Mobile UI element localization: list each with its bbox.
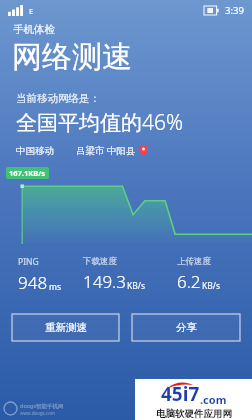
staticText: 上传速度 — [177, 256, 211, 267]
staticText: 6.2 — [177, 270, 201, 293]
staticText: 重新测速 — [45, 321, 87, 334]
button[interactable]: 分享 — [132, 314, 240, 341]
staticText: 当前移动网络是： — [16, 92, 100, 105]
staticText: 3:39 — [225, 4, 244, 17]
staticText: 电脑软硬件应用网 — [156, 408, 232, 420]
staticText: KB/s — [202, 280, 221, 292]
staticText: 分享 — [176, 321, 197, 334]
staticText: www.doogs.com — [20, 410, 56, 416]
staticText: 手机体检 — [13, 23, 55, 36]
staticText: 149.3 — [83, 270, 126, 293]
staticText: 167.1KB/s — [9, 168, 46, 178]
staticText: 中国移动 — [16, 145, 54, 157]
staticText: 吕梁市 中阳县 — [76, 144, 136, 157]
staticText: doogs智能手机网 — [20, 402, 64, 410]
staticText: 948 — [18, 271, 48, 294]
staticText: E — [29, 6, 34, 16]
staticText: 下载速度 — [83, 256, 117, 267]
staticText: 45i7 — [161, 381, 200, 407]
staticText: PING — [18, 256, 39, 268]
staticText: ms — [49, 281, 62, 293]
staticText: 全国平均值的46% — [16, 108, 184, 137]
button[interactable]: 重新测速 — [12, 314, 119, 341]
staticText: KB/s — [127, 280, 146, 292]
staticText: .com — [200, 392, 227, 407]
staticText: 网络测速 — [12, 38, 132, 76]
